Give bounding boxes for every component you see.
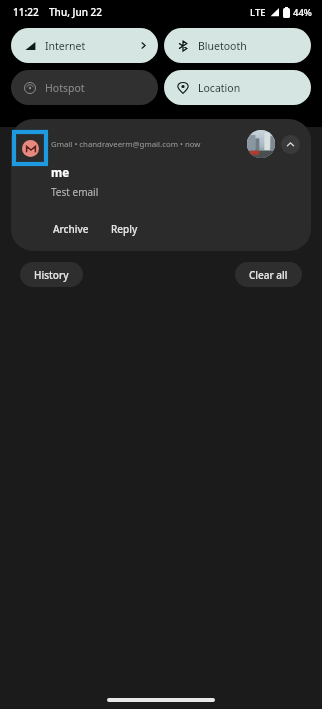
button[interactable]: Internet [11, 28, 158, 63]
button[interactable]: Clear all [235, 262, 302, 287]
staticText: Internet [45, 39, 86, 53]
staticText: 44% [293, 6, 312, 19]
staticText: Location [198, 81, 241, 95]
other: Gmail app icon [12, 130, 48, 166]
staticText: Thu, Jun 22 [49, 5, 102, 19]
button[interactable]: Collapse notification [281, 135, 300, 154]
staticText: History [34, 268, 69, 282]
button[interactable]: Location [164, 70, 311, 105]
staticText: Hotspot [45, 81, 85, 95]
staticText: 11:22 [13, 5, 39, 19]
staticText: Test email [51, 185, 99, 199]
button[interactable]: Gmail • chandraveerm@gmail.com • now [11, 119, 311, 251]
staticText: LTE [250, 6, 266, 19]
staticText: Reply [111, 222, 138, 236]
staticText: Gmail • chandraveerm@gmail.com • now [51, 139, 243, 150]
staticText: me [51, 165, 70, 181]
staticText: Bluetooth [198, 39, 247, 53]
button[interactable]: Archive [51, 220, 91, 238]
staticText: Archive [53, 222, 89, 236]
staticText: Clear all [249, 268, 288, 282]
button[interactable]: Bluetooth [164, 28, 311, 63]
button[interactable]: Reply [109, 220, 140, 238]
button[interactable]: History [20, 262, 83, 287]
button[interactable]: Hotspot [11, 70, 158, 105]
